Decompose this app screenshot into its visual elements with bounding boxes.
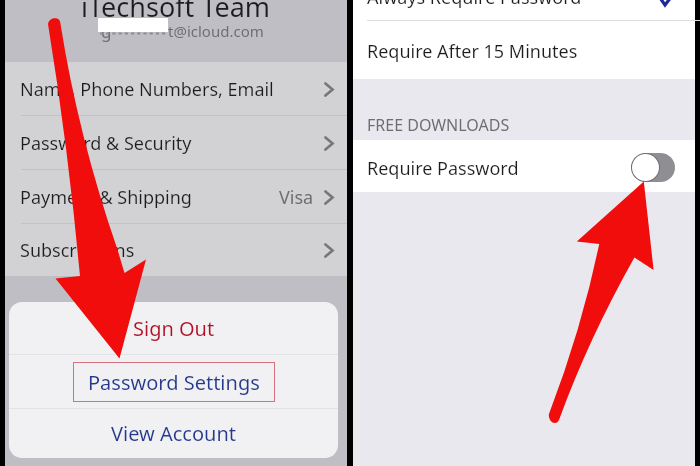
- button[interactable]: Password & Security: [5, 116, 347, 170]
- staticText: Subscriptions: [20, 238, 135, 263]
- staticText: FREE DOWNLOADS: [367, 114, 510, 136]
- staticText: g: [101, 20, 112, 43]
- staticText: Password & Security: [20, 131, 192, 156]
- button[interactable]: Subscriptions: [5, 224, 347, 276]
- button[interactable]: Password Settings: [9, 355, 338, 408]
- button[interactable]: View Account: [9, 409, 338, 458]
- staticText: Password Settings: [88, 369, 260, 396]
- button[interactable]: Require Password toggle, off: [631, 153, 675, 182]
- staticText: Name, Phone Numbers, Email: [20, 77, 274, 102]
- staticText: View Account: [111, 420, 236, 447]
- staticText: Require Password: [367, 156, 519, 181]
- staticText: iTechsoft Team: [81, 0, 271, 25]
- button[interactable]: Payment & Shipping: [5, 170, 347, 224]
- staticText: Visa: [279, 185, 314, 210]
- staticText: Payment & Shipping: [20, 185, 192, 210]
- button[interactable]: Name, Phone Numbers, Email: [5, 62, 347, 116]
- staticText: Require After 15 Minutes: [367, 39, 578, 64]
- staticText: t@icloud.com: [168, 21, 264, 41]
- staticText: Always Require Password: [367, 0, 582, 10]
- staticText: Sign Out: [133, 315, 215, 342]
- button[interactable]: Sign Out: [9, 302, 338, 354]
